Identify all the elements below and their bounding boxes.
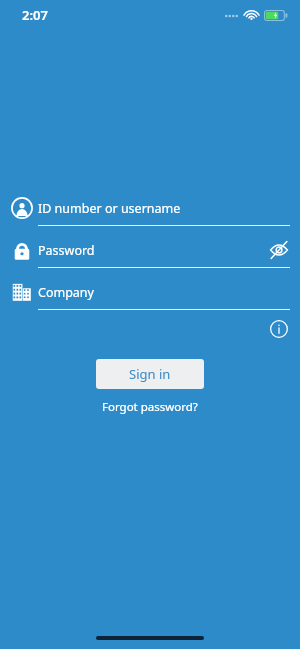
staticText: Password (38, 242, 95, 259)
button[interactable]: Company (0, 280, 300, 310)
button[interactable]: Password (0, 238, 300, 268)
staticText: Sign in (129, 365, 171, 383)
staticText: Company (38, 284, 94, 301)
staticText: ID number or username (38, 200, 181, 217)
button[interactable]: ID number or username (0, 196, 300, 226)
button[interactable]: Forgot password? (96, 397, 204, 417)
button[interactable]: Information (266, 316, 292, 342)
button[interactable]: Sign in (96, 359, 204, 389)
staticText: 2:07 (22, 6, 48, 24)
button[interactable]: Show password (268, 239, 290, 261)
staticText: Forgot password? (102, 399, 198, 415)
